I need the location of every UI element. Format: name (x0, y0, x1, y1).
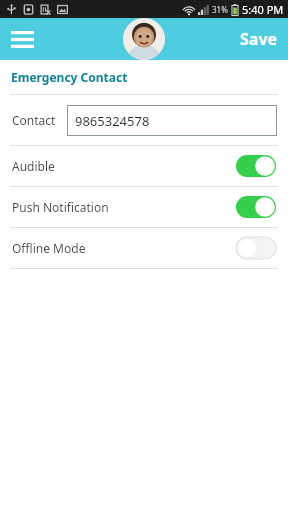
staticText: Offline Mode (12, 240, 86, 256)
button[interactable]: Push Notification (0, 187, 288, 227)
staticText: 31% (212, 4, 228, 15)
button[interactable]: Contact (0, 95, 288, 145)
button[interactable]: Profile photo (123, 18, 165, 60)
staticText: Contact (12, 112, 56, 128)
staticText: Save (240, 28, 278, 50)
button[interactable]: Menu (6, 23, 38, 55)
button[interactable]: Audible (0, 146, 288, 186)
button[interactable]: Off (236, 237, 276, 259)
button[interactable]: Offline Mode (0, 228, 288, 268)
button[interactable]: On (236, 155, 276, 177)
staticText: 9865324578 (75, 112, 150, 130)
staticText: 5:40 PM (242, 2, 284, 17)
staticText: Audible (12, 158, 55, 174)
staticText: Push Notification (12, 199, 109, 215)
staticText: Emergency Contact (11, 69, 128, 85)
button[interactable]: Save (230, 20, 288, 58)
button[interactable]: On (236, 196, 276, 218)
